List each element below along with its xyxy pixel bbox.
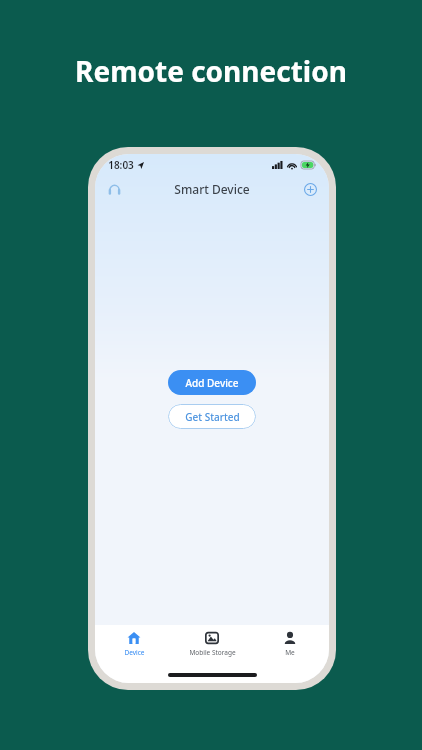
- button[interactable]: Device: [98, 630, 170, 658]
- button[interactable]: Support: [103, 178, 125, 200]
- staticText: Smart Device: [174, 181, 250, 197]
- staticText: Get Started: [185, 410, 240, 424]
- button[interactable]: Add Device: [168, 370, 256, 395]
- staticText: 18:03: [108, 158, 134, 172]
- staticText: Device: [124, 648, 145, 657]
- staticText: Mobile Storage: [189, 648, 236, 657]
- staticText: Remote connection: [75, 52, 347, 90]
- staticText: Add Device: [185, 376, 239, 390]
- button[interactable]: Add: [299, 178, 321, 200]
- button[interactable]: Me: [254, 630, 326, 658]
- button[interactable]: Mobile Storage: [176, 630, 248, 658]
- staticText: Me: [285, 648, 295, 657]
- button[interactable]: Get Started: [168, 404, 256, 429]
